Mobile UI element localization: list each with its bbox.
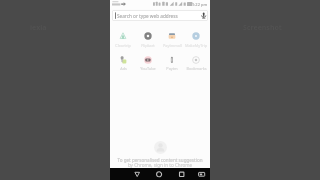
staticText: Bookmarks (186, 66, 207, 71)
staticText: by Chrome, sign in to Chrome (110, 162, 210, 168)
button[interactable]: Search or type web address (112, 10, 208, 21)
button[interactable] (136, 53, 160, 67)
button[interactable] (136, 29, 160, 43)
staticText: MakeMyTrip (185, 43, 207, 48)
staticText: Paytmmall (163, 43, 182, 48)
staticText: Paytm (166, 66, 178, 71)
button[interactable] (111, 53, 135, 67)
staticText: Flipkart (141, 43, 155, 48)
button[interactable] (160, 29, 184, 43)
staticText: 1:22 pm (192, 2, 208, 7)
button[interactable] (184, 29, 208, 43)
staticText: YouTube (140, 66, 156, 71)
staticText: Cleartrip (115, 43, 131, 48)
button[interactable]: Recent apps (176, 168, 188, 180)
staticText: To get personalised content suggestion (110, 157, 210, 163)
button[interactable]: Home (153, 168, 165, 180)
button[interactable] (160, 53, 184, 67)
staticText: Search or type web address (117, 13, 178, 19)
button[interactable]: Back (131, 168, 143, 180)
button[interactable] (111, 29, 135, 43)
button[interactable] (184, 53, 208, 67)
staticText: Ads (120, 66, 127, 71)
button[interactable]: Screenshot (196, 168, 208, 180)
